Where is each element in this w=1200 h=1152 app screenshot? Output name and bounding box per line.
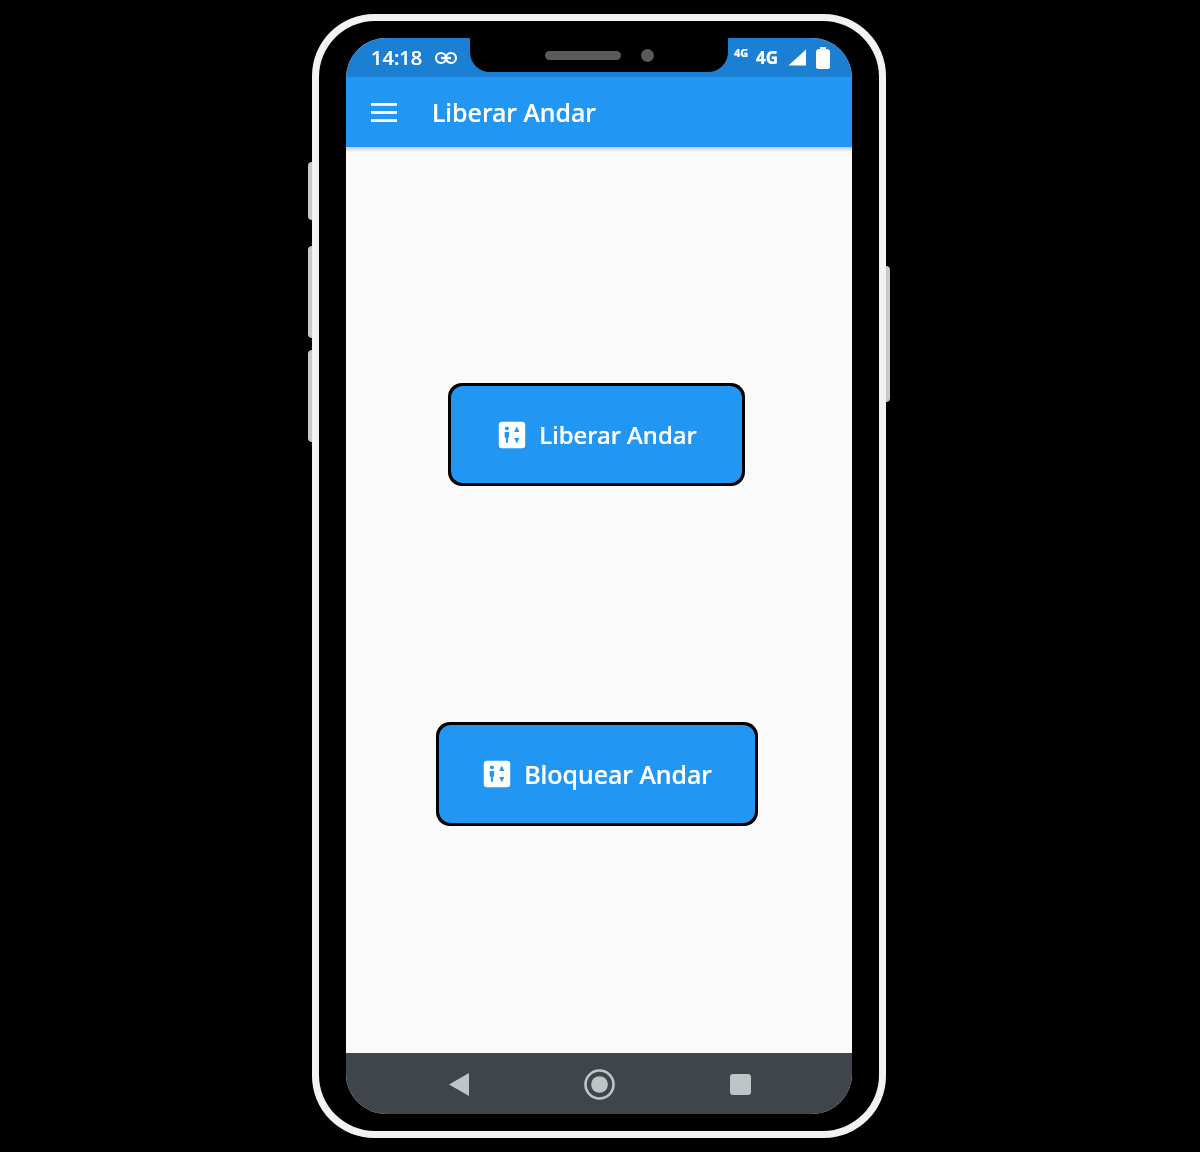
- staticText: Bloquear Andar: [524, 757, 712, 791]
- staticText: 4G: [734, 45, 749, 60]
- button[interactable]: Home: [571, 1056, 627, 1112]
- staticText: Liberar Andar: [432, 95, 596, 129]
- button[interactable]: Bloquear Andar: [439, 725, 755, 823]
- staticText: 14:18: [371, 44, 423, 71]
- button[interactable]: Recent apps: [712, 1056, 768, 1112]
- button[interactable]: Liberar Andar: [451, 386, 742, 483]
- button[interactable]: Open navigation menu: [360, 88, 408, 136]
- button[interactable]: Back: [431, 1056, 487, 1112]
- staticText: Liberar Andar: [539, 418, 697, 451]
- staticText: 4G: [756, 46, 779, 69]
